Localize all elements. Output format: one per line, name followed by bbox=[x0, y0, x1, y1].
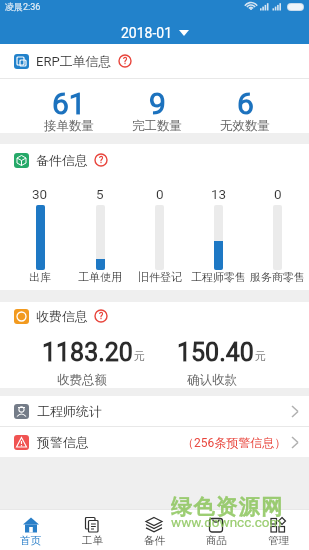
staticText: 9 bbox=[149, 86, 166, 121]
staticText: 收费总额 bbox=[12, 372, 152, 388]
button[interactable]: 备件 bbox=[123, 510, 185, 550]
staticText: 工程师零售 bbox=[191, 270, 246, 284]
staticText: 无效数量 bbox=[220, 118, 270, 134]
button[interactable]: 收费信息 bbox=[0, 302, 309, 330]
staticText: 预警信息 bbox=[37, 434, 89, 450]
staticText: 收费信息 bbox=[36, 308, 88, 324]
staticText: 接单数量 bbox=[44, 118, 94, 134]
staticText: 工单 bbox=[82, 534, 103, 547]
button[interactable]: 首页 bbox=[0, 510, 61, 550]
staticText: 元 bbox=[134, 349, 145, 363]
staticText: ? bbox=[99, 311, 104, 322]
staticText: www.downcc.com bbox=[171, 514, 282, 530]
staticText: 旧件登记 bbox=[138, 270, 182, 284]
staticText: 工单使用 bbox=[78, 270, 122, 284]
staticText: 备件信息 bbox=[36, 152, 88, 168]
button[interactable]: 管理 bbox=[247, 510, 309, 550]
staticText: ? bbox=[99, 155, 104, 166]
staticText: 61 bbox=[52, 86, 86, 121]
button[interactable]: 2018-01 bbox=[121, 25, 189, 41]
staticText: 0 bbox=[274, 186, 282, 202]
staticText: ERP工单信息 bbox=[36, 53, 112, 69]
staticText: 首页 bbox=[20, 534, 41, 547]
button[interactable]: 商品 bbox=[185, 510, 247, 550]
staticText: 2018-01 bbox=[121, 25, 173, 41]
staticText: 管理 bbox=[268, 534, 289, 547]
button[interactable]: 工程师统计 bbox=[0, 396, 309, 426]
staticText: 元 bbox=[255, 349, 266, 363]
staticText: 6 bbox=[237, 86, 254, 121]
staticText: 绿色资源网 bbox=[171, 494, 284, 520]
button[interactable]: 备件信息 bbox=[0, 144, 309, 176]
staticText: 出库 bbox=[29, 270, 51, 284]
staticText: 凌晨2:36 bbox=[5, 1, 41, 12]
staticText: 13 bbox=[211, 186, 227, 202]
button[interactable]: ERP工单信息 bbox=[0, 44, 309, 78]
staticText: 工程师统计 bbox=[37, 403, 102, 419]
staticText: 0 bbox=[156, 186, 164, 202]
staticText: 150.40 bbox=[177, 338, 254, 367]
button[interactable]: 工单 bbox=[61, 510, 123, 550]
button[interactable]: 预警信息 bbox=[0, 427, 309, 457]
staticText: 备件 bbox=[144, 534, 165, 547]
staticText: 完工数量 bbox=[132, 118, 182, 134]
staticText: ? bbox=[123, 56, 128, 67]
staticText: 确认收款 bbox=[142, 372, 282, 388]
staticText: 服务商零售 bbox=[250, 270, 305, 284]
staticText: 30 bbox=[32, 186, 48, 202]
staticText: 商品 bbox=[206, 534, 227, 547]
staticText: （256条预警信息） bbox=[182, 435, 287, 450]
staticText: 1183.20 bbox=[42, 338, 133, 367]
staticText: 5 bbox=[96, 186, 104, 202]
